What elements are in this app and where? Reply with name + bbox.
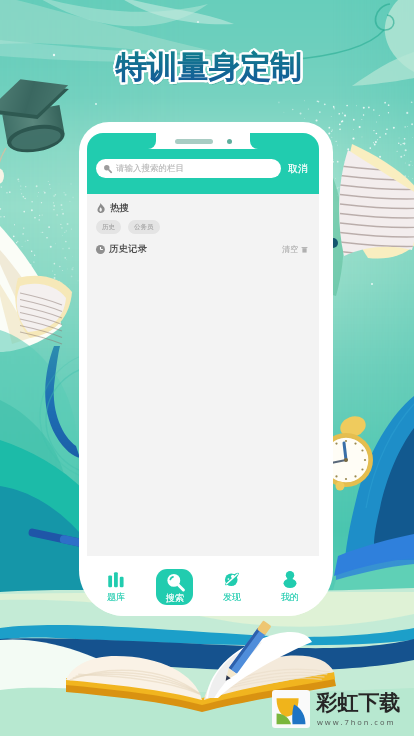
staticText: w w w . 7 h o n . c o m (317, 717, 394, 727)
button[interactable]: 取消 (281, 160, 309, 177)
button[interactable]: 题库 (87, 570, 145, 602)
staticText: 特训量身定制 (115, 48, 301, 87)
staticText: 我的 (281, 591, 299, 602)
button[interactable]: 清空 (280, 242, 310, 256)
staticText: 特训量身定制 (114, 47, 300, 86)
staticText: 公务员 (134, 223, 154, 231)
staticText: 搜索 (166, 592, 184, 603)
button[interactable]: 搜索 (145, 568, 203, 604)
staticText: 彩虹下载 (316, 690, 400, 716)
staticText: 热搜 (110, 202, 129, 214)
staticText: 特训量身定制 (116, 46, 302, 85)
staticText: 特训量身定制 (117, 51, 303, 90)
staticText: 历史记录 (109, 243, 147, 255)
staticText: 特训量身定制 (115, 50, 301, 89)
staticText: 特训量身定制 (114, 50, 300, 89)
staticText: 发现 (223, 591, 241, 602)
staticText: 特训量身定制 (113, 48, 299, 87)
staticText: 取消 (288, 162, 308, 175)
staticText: 历史 (102, 223, 115, 231)
staticText: 特训量身定制 (113, 47, 299, 86)
button[interactable]: 公务员 (128, 220, 160, 234)
staticText: 特训量身定制 (115, 46, 301, 85)
staticText: 请输入搜索的栏目 (116, 163, 184, 174)
other: Search (103, 164, 112, 173)
staticText: 特训量身定制 (114, 50, 300, 89)
button[interactable]: 我的 (261, 570, 319, 602)
staticText: 特训量身定制 (117, 49, 303, 88)
staticText: 特训量身定制 (117, 48, 303, 87)
staticText: 题库 (107, 591, 125, 602)
staticText: 特训量身定制 (117, 50, 303, 89)
button[interactable]: 发现 (203, 570, 261, 602)
button[interactable]: Search (96, 159, 281, 178)
staticText: 清空 (282, 244, 298, 254)
button[interactable]: 历史 (96, 220, 121, 234)
staticText: 特训量身定制 (117, 47, 303, 86)
